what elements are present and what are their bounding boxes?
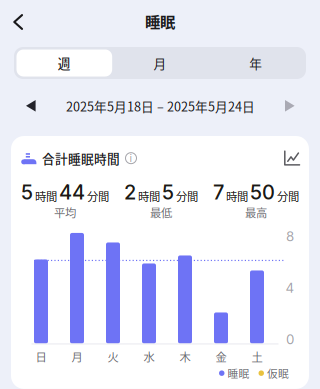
button[interactable]: 戻る: [0, 3, 39, 39]
staticText: 2025年5月18日 – 2025年5月24日: [66, 97, 255, 115]
staticText: 水: [143, 348, 154, 365]
staticText: 平均: [54, 204, 76, 220]
button[interactable]: 月: [112, 49, 208, 76]
staticText: 日: [35, 348, 46, 365]
button[interactable]: 次の週: [271, 92, 312, 120]
staticText: 火: [107, 348, 118, 365]
staticText: 7 時間 50 分間: [213, 180, 299, 204]
staticText: 週: [58, 54, 71, 72]
staticText: 仮眠: [267, 365, 289, 381]
staticText: 木: [179, 348, 190, 365]
staticText: 0: [286, 331, 294, 347]
staticText: 4: [285, 280, 294, 296]
button[interactable]: 週: [16, 49, 112, 76]
staticText: 5 時間 44 分間: [21, 180, 109, 204]
staticText: 合計睡眠時間: [42, 149, 120, 167]
button[interactable]: 前の週: [8, 92, 50, 120]
staticText: 月: [153, 54, 166, 72]
staticText: 2 時間 5 分間: [124, 180, 198, 204]
staticText: 8: [286, 228, 294, 244]
staticText: i: [129, 152, 132, 165]
staticText: 土: [251, 348, 262, 365]
staticText: 月: [71, 348, 82, 365]
staticText: 最高: [245, 204, 267, 220]
staticText: 金: [215, 348, 226, 365]
button[interactable]: グラフ: [284, 151, 300, 166]
staticText: 睡眠: [227, 365, 249, 381]
button[interactable]: 年: [208, 49, 303, 76]
staticText: 年: [249, 54, 262, 72]
staticText: 最低: [150, 204, 172, 220]
staticText: 睡眠: [145, 10, 175, 32]
